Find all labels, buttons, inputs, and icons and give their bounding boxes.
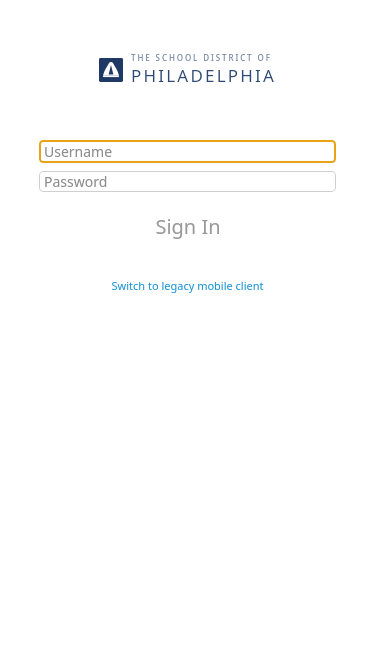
staticText: PHILADELPHIA [131, 64, 277, 87]
button[interactable]: Password [39, 171, 336, 192]
staticText: Username [44, 142, 113, 161]
button[interactable]: Switch to legacy mobile client [103, 274, 272, 297]
staticText: Switch to legacy mobile client [111, 278, 264, 293]
staticText: Password [44, 172, 108, 191]
button[interactable]: Username [39, 140, 336, 163]
button[interactable]: Sign In [0, 209, 375, 244]
staticText: Sign In [155, 213, 221, 240]
staticText: THE SCHOOL DISTRICT OF [131, 52, 272, 63]
